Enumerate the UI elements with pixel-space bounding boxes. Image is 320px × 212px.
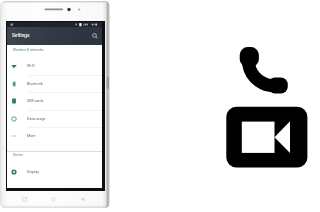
staticText: SIM cards — [27, 99, 44, 103]
button[interactable]: Voice call — [238, 45, 290, 95]
staticText: Wi-Fi — [27, 64, 36, 68]
staticText: Settings — [12, 33, 30, 39]
staticText: Data usage — [27, 117, 46, 121]
button[interactable]: More — [7, 127, 102, 144]
button[interactable]: Wi-Fi — [7, 57, 102, 74]
staticText: Bluetooth — [27, 82, 43, 86]
button[interactable]: Search — [89, 30, 101, 42]
staticText: Device — [13, 153, 24, 157]
button[interactable]: Bluetooth — [7, 75, 102, 92]
staticText: Display — [27, 170, 39, 174]
button[interactable]: Display — [7, 163, 102, 180]
button[interactable]: Data usage — [7, 110, 102, 127]
staticText: Wireless & networks — [13, 48, 44, 52]
button[interactable]: Video call — [226, 107, 308, 168]
button[interactable]: SIM cards — [7, 92, 102, 109]
staticText: More — [27, 134, 36, 138]
